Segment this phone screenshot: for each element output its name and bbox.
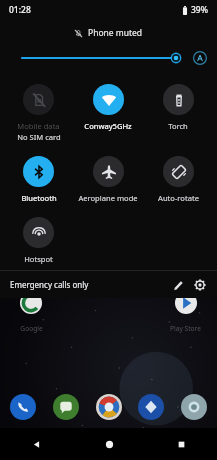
button[interactable]: App <box>53 394 79 420</box>
button[interactable]: Google <box>12 300 50 333</box>
staticText: Bluetooth <box>21 193 57 203</box>
button[interactable]: Auto brightness <box>191 49 209 67</box>
button[interactable]: Emergency calls only <box>10 279 89 290</box>
button[interactable]: Conway5GHz <box>73 82 143 133</box>
button[interactable]: Torch <box>143 82 213 133</box>
button[interactable]: Recent apps <box>145 428 217 460</box>
button[interactable]: Bluetooth <box>4 154 73 205</box>
button[interactable]: Mobile data <box>4 82 73 144</box>
staticText: Phone muted <box>88 27 143 39</box>
button[interactable]: App <box>10 394 36 420</box>
button[interactable]: Brightness <box>22 47 185 69</box>
button[interactable]: Play Store <box>166 300 205 333</box>
button[interactable]: Back <box>0 428 73 460</box>
button[interactable]: Settings <box>189 274 211 296</box>
button[interactable]: Hotspot <box>4 215 73 266</box>
staticText: 39% <box>191 4 208 16</box>
staticText: Conway5GHz <box>84 121 132 131</box>
staticText: Auto-rotate <box>158 193 199 203</box>
button[interactable]: App <box>181 394 207 420</box>
staticText: Emergency calls only <box>10 279 89 290</box>
button[interactable]: App <box>138 394 164 420</box>
button[interactable]: Home <box>73 428 145 460</box>
staticText: Mobile data <box>17 121 60 131</box>
button[interactable]: Edit tiles <box>167 274 189 296</box>
staticText: 01:28 <box>9 4 31 16</box>
staticText: Hotspot <box>24 254 53 264</box>
button[interactable]: Aeroplane mode <box>73 154 143 205</box>
staticText: No SIM card <box>17 132 61 142</box>
staticText: Torch <box>168 121 188 131</box>
button[interactable]: Auto-rotate <box>143 154 213 205</box>
staticText: Play Store <box>170 324 201 333</box>
staticText: Aeroplane mode <box>78 193 138 203</box>
button[interactable]: App <box>96 394 122 420</box>
staticText: Google <box>20 324 43 333</box>
